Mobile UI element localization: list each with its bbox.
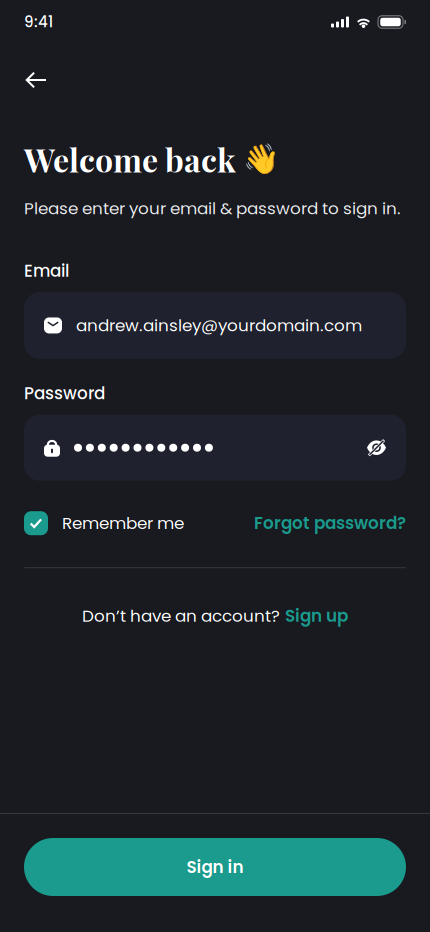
button[interactable]: Forgot password? — [254, 511, 406, 535]
staticText: Forgot password? — [254, 511, 406, 535]
staticText: 👋 — [243, 142, 280, 176]
button[interactable]: Show password — [367, 439, 386, 456]
staticText: Sign in — [186, 855, 243, 879]
button[interactable]: Back — [14, 58, 58, 102]
staticText: Password — [24, 382, 105, 405]
staticText: Email — [24, 259, 69, 283]
staticText: andrew.ainsley@yourdomain.com — [76, 314, 362, 337]
staticText: Don’t have an account? — [82, 604, 280, 628]
staticText: 9:41 — [24, 11, 53, 33]
button[interactable]: Don’t have an account? — [0, 593, 430, 639]
staticText: Welcome back — [24, 138, 236, 181]
button[interactable]: Remember me — [24, 511, 184, 535]
staticText: Please enter your email & password to si… — [24, 197, 401, 220]
staticText: Remember me — [62, 511, 184, 535]
staticText: Sign up — [285, 604, 348, 628]
button[interactable]: Sign in — [24, 838, 406, 896]
